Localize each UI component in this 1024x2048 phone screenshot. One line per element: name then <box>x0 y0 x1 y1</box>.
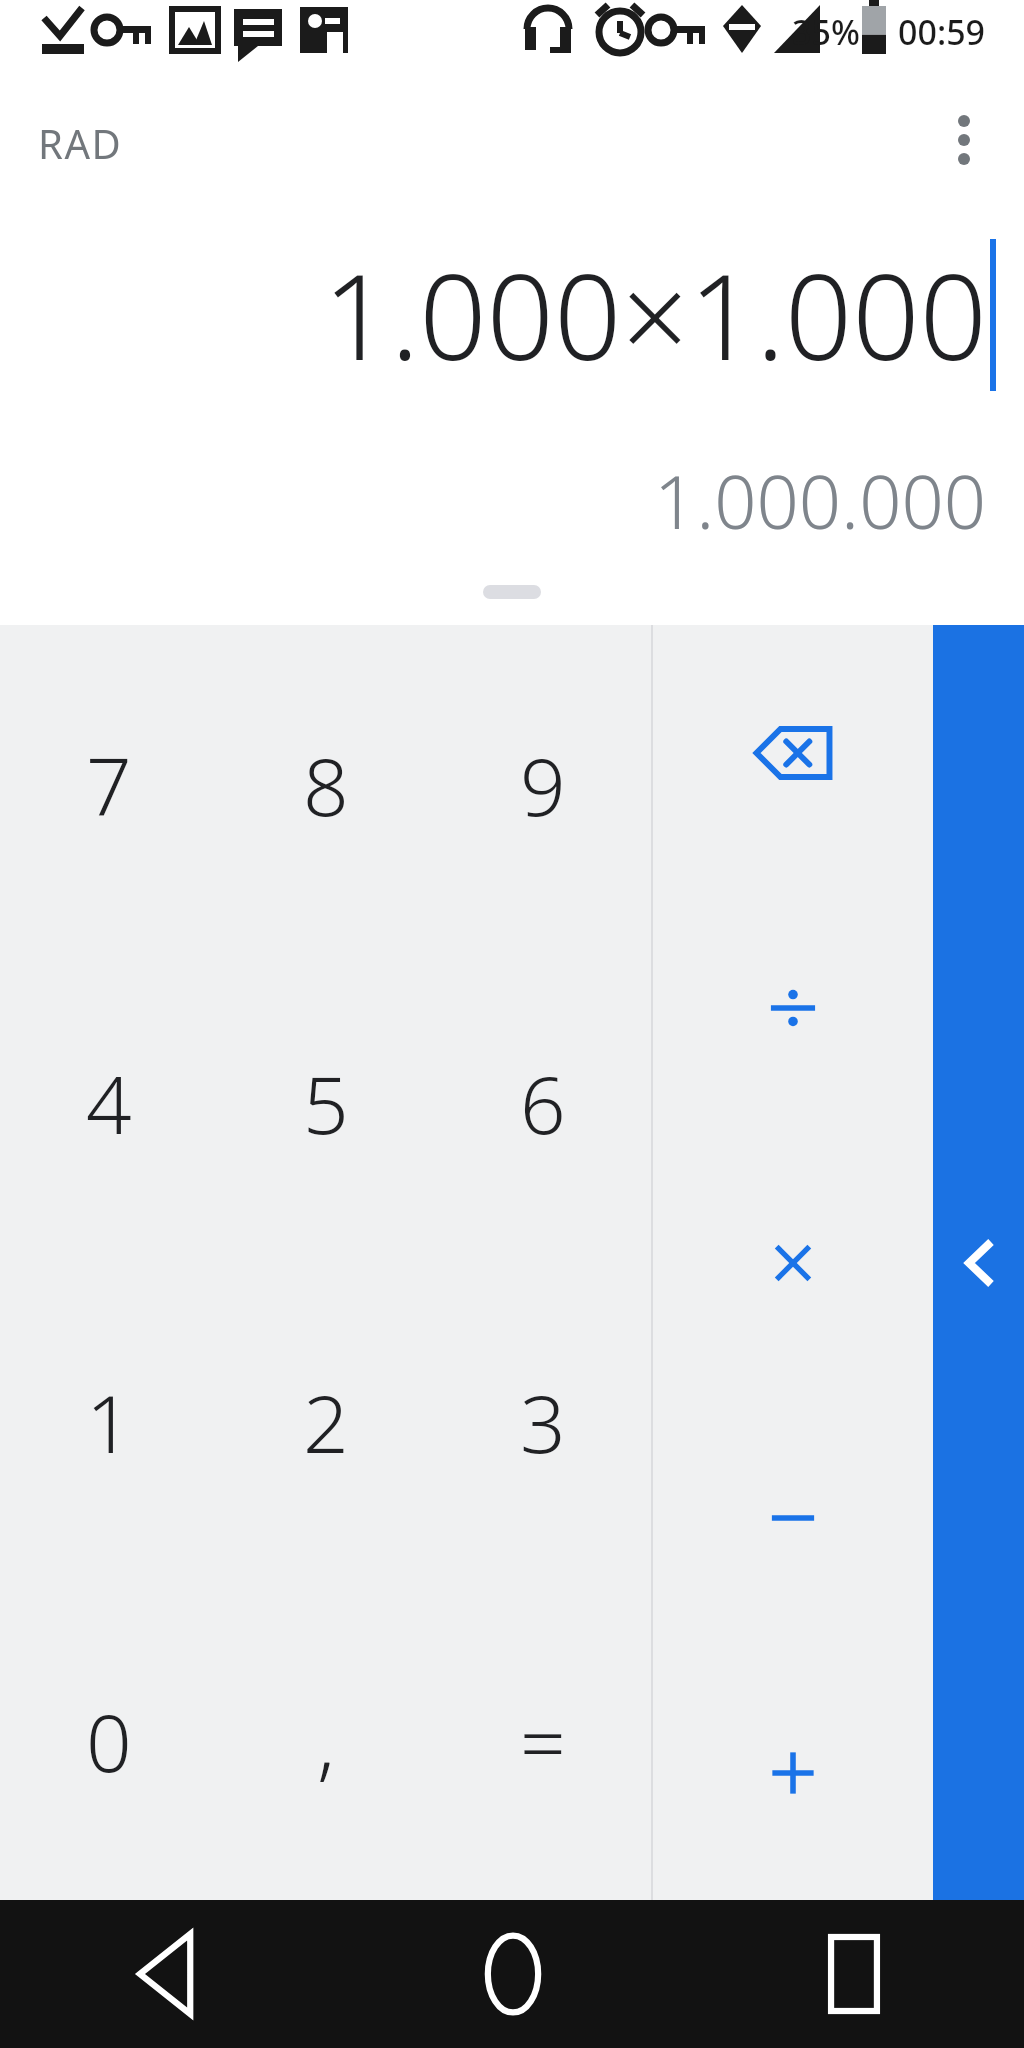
staticText: 7 <box>86 730 132 839</box>
button[interactable]: RAD <box>30 110 131 176</box>
button[interactable]: 5 <box>217 943 434 1262</box>
button[interactable]: Backspace <box>653 625 933 880</box>
staticText: 00:59 <box>898 9 986 55</box>
staticText: , <box>317 1686 335 1795</box>
staticText: 1 <box>86 1367 132 1476</box>
staticText: 6 <box>520 1048 566 1157</box>
button[interactable]: 3 <box>434 1262 651 1581</box>
button[interactable]: Add <box>653 1645 933 1900</box>
staticText: 35% <box>792 9 860 55</box>
button[interactable]: Home <box>342 1900 683 2048</box>
button[interactable]: Back <box>0 1900 342 2048</box>
staticText: 8 <box>303 730 349 839</box>
button[interactable]: 8 <box>217 625 434 943</box>
staticText: 5 <box>303 1048 349 1157</box>
staticText: 0 <box>86 1686 132 1795</box>
button[interactable]: Subtract <box>653 1390 933 1645</box>
button[interactable]: 2 <box>217 1262 434 1581</box>
staticText: 1.000.000 <box>654 450 986 551</box>
staticText: 2 <box>303 1367 349 1476</box>
staticText: 4 <box>86 1048 132 1157</box>
button[interactable]: 0 <box>0 1581 217 1900</box>
button[interactable]: Show advanced keypad <box>933 625 1024 1900</box>
button[interactable]: , <box>217 1581 434 1900</box>
button[interactable]: = <box>434 1581 651 1900</box>
staticText: 9 <box>520 730 566 839</box>
staticText: 1.000×1.000 <box>323 234 987 395</box>
staticText: RAD <box>38 116 123 170</box>
button[interactable]: 7 <box>0 625 217 943</box>
button[interactable]: Recents <box>683 1900 1024 2048</box>
button[interactable]: More options <box>926 102 1002 178</box>
staticText: 3 <box>520 1367 566 1476</box>
button[interactable]: Multiply <box>653 1135 933 1390</box>
button[interactable]: Divide <box>653 880 933 1135</box>
button[interactable]: 4 <box>0 943 217 1262</box>
button[interactable]: 1 <box>0 1262 217 1581</box>
button[interactable]: 9 <box>434 625 651 943</box>
staticText: = <box>520 1686 566 1795</box>
button[interactable]: 6 <box>434 943 651 1262</box>
